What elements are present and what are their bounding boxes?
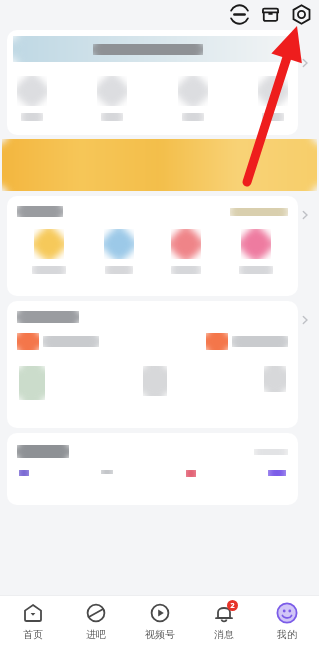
button[interactable] — [7, 196, 298, 296]
staticText: 我的 — [277, 628, 297, 641]
button[interactable]: 首页 — [1, 596, 64, 648]
staticText: 2 — [230, 601, 235, 611]
button[interactable] — [7, 30, 298, 135]
staticText: 进吧 — [86, 628, 106, 641]
staticText: 视频号 — [145, 628, 175, 641]
staticText: 首页 — [23, 628, 43, 641]
button[interactable]: Settings — [287, 0, 315, 28]
button[interactable] — [2, 139, 317, 191]
button[interactable] — [7, 433, 298, 505]
button[interactable]: 2 — [192, 596, 255, 648]
button[interactable]: Scan — [225, 0, 253, 28]
button[interactable]: 视频号 — [128, 596, 191, 648]
staticText: 消息 — [214, 628, 234, 641]
button[interactable]: Packages — [256, 0, 284, 28]
button[interactable] — [7, 301, 298, 428]
button[interactable]: 进吧 — [64, 596, 127, 648]
button[interactable]: 我的 — [255, 596, 318, 648]
